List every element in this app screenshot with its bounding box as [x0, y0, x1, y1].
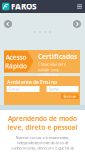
staticText: Clique aqui para — [38, 61, 66, 67]
staticText: Certificados — [38, 52, 77, 61]
button[interactable]: Previous slide — [0, 0, 8, 8]
staticText: leve, direto e pessoal — [7, 123, 77, 132]
button[interactable]: Certificados — [0, 0, 42, 20]
staticText: Nossos cursos e treinamentos, — [15, 135, 69, 140]
staticText: Senha — [48, 86, 58, 92]
button[interactable]: Entrar — [0, 0, 18, 5]
staticText: Entrar — [63, 94, 76, 99]
staticText: independentemente da área de — [16, 140, 68, 145]
button[interactable]: Senha — [0, 0, 32, 6]
staticText: Acesso — [5, 53, 26, 61]
button[interactable]: E-mail — [0, 0, 33, 6]
staticText: Aprendendo de modo — [8, 114, 77, 123]
staticText: E-mail — [8, 86, 19, 92]
button[interactable]: Next slide — [0, 0, 8, 8]
button[interactable]: Acesso — [0, 0, 24, 21]
staticText: Rápido — [5, 61, 27, 70]
staticText: Ambiente de Ensino — [7, 78, 57, 86]
button[interactable]: Menu — [0, 0, 9, 9]
staticText: FAROS — [11, 1, 37, 12]
staticText: conhecimento, oferecem o que há de — [11, 145, 74, 151]
button[interactable]: FAROS — [0, 0, 36, 13]
staticText: validar seus certificados. — [38, 67, 59, 78]
